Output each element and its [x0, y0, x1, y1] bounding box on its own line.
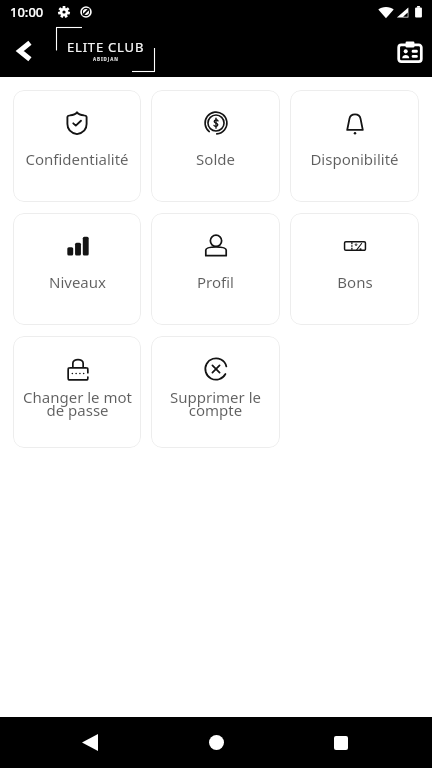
button[interactable]: Recents [299, 717, 383, 768]
button[interactable]: Supprimer le compte [151, 336, 280, 448]
staticText: ELITE CLUB [67, 38, 145, 56]
staticText: Confidentialité [25, 149, 129, 169]
button[interactable]: Disponibilité [290, 90, 419, 202]
staticText: Niveaux [49, 272, 106, 292]
staticText: Disponibilité [310, 149, 399, 169]
button[interactable]: Changer le mot de passe [13, 336, 141, 448]
button[interactable]: Solde [151, 90, 280, 202]
button[interactable]: Back [0, 27, 48, 75]
button[interactable]: Profil [151, 213, 280, 325]
staticText: 10:00 [10, 3, 44, 21]
button[interactable]: Membership card [388, 30, 432, 74]
staticText: Supprimer le compte [170, 387, 261, 421]
button[interactable]: Bons [290, 213, 419, 325]
staticText: ABIDJAN [93, 56, 119, 62]
button[interactable]: Home [174, 717, 258, 768]
staticText: Profil [197, 272, 234, 292]
button[interactable]: Confidentialité [13, 90, 141, 202]
button[interactable]: Niveaux [13, 213, 141, 325]
button[interactable]: Back [48, 717, 132, 768]
staticText: Bons [337, 272, 373, 292]
staticText: Solde [196, 149, 235, 169]
staticText: Changer le mot de passe [23, 387, 132, 421]
